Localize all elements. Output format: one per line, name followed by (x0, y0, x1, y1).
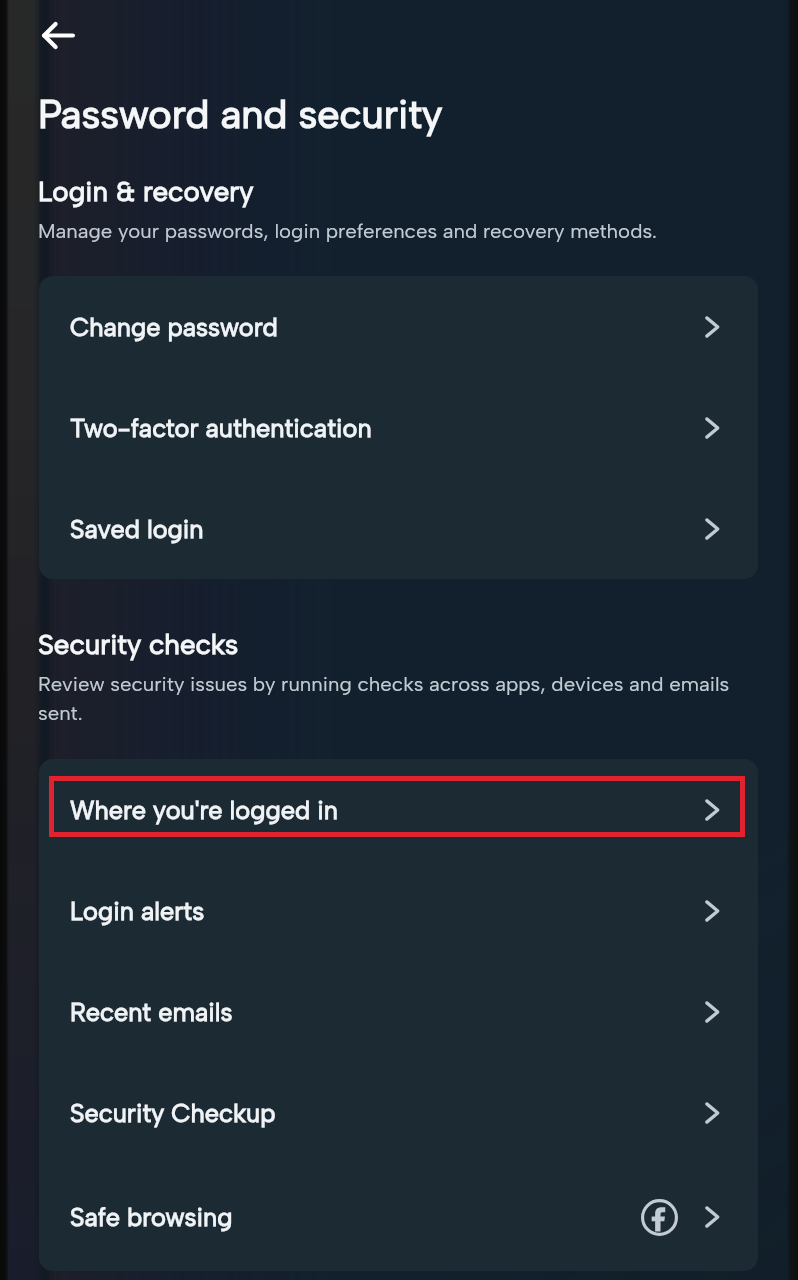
staticText: Saved login (70, 514, 204, 544)
button[interactable]: Change password (39, 276, 758, 377)
button[interactable]: Saved login (39, 478, 758, 579)
button[interactable]: Recent emails (39, 961, 758, 1062)
staticText: Manage your passwords, login preferences… (38, 215, 738, 244)
staticText: Two-factor authentication (70, 413, 372, 443)
button[interactable]: Safe browsing (39, 1163, 758, 1271)
staticText: Security Checkup (70, 1098, 276, 1128)
staticText: Security checks (38, 629, 239, 661)
staticText: Recent emails (70, 997, 233, 1027)
button[interactable]: Two-factor authentication (39, 377, 758, 478)
button[interactable]: Login alerts (39, 860, 758, 961)
staticText: Password and security (38, 90, 443, 138)
staticText: Login & recovery (38, 176, 254, 208)
button[interactable]: Security Checkup (39, 1062, 758, 1163)
staticText: Safe browsing (70, 1202, 233, 1232)
button[interactable]: Where you're logged in (39, 759, 758, 860)
button[interactable]: Back (32, 9, 84, 61)
staticText: Review security issues by running checks… (38, 668, 738, 726)
staticText: Change password (70, 312, 278, 342)
staticText: Login alerts (70, 896, 205, 926)
staticText: Where you're logged in (70, 795, 338, 825)
